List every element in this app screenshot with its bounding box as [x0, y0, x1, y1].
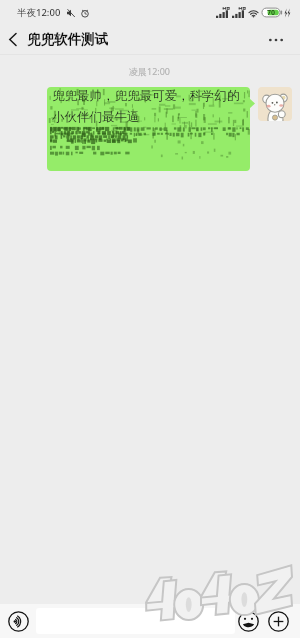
button[interactable]: Voice input [6, 609, 30, 633]
staticText: 半夜12:00 [17, 6, 61, 19]
button[interactable]: More [266, 609, 290, 633]
staticText: 凌晨12:00 [129, 65, 171, 77]
button[interactable]: Emoji [236, 609, 260, 633]
staticText: 70 [267, 8, 276, 18]
button[interactable] [36, 608, 235, 634]
button[interactable]: 兜兜最帅，兜兜最可爱，科学幻的小伙伴们最牛逼 [47, 87, 250, 171]
button[interactable]: Back [0, 24, 22, 55]
staticText: 兜兜软件测试 [27, 31, 108, 48]
button[interactable]: Avatar [258, 87, 292, 121]
button[interactable]: More options [259, 24, 300, 55]
staticText: 兜兜最帅，兜兜最可爱，科学幻的小伙伴们最牛逼 [52, 88, 248, 124]
